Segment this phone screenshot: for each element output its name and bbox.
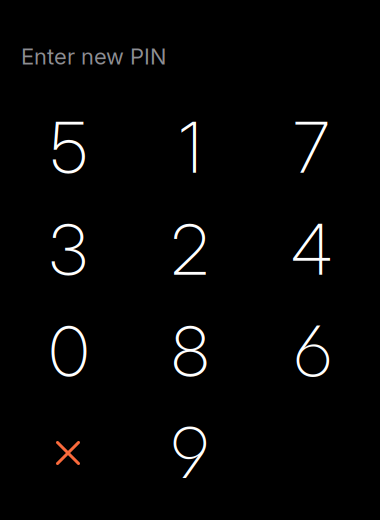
button[interactable]: Enter new PIN [21, 41, 171, 71]
staticText: 9 [170, 401, 210, 505]
button[interactable]: 0 [13, 303, 125, 399]
staticText: 0 [49, 310, 89, 393]
staticText: 5 [50, 106, 87, 189]
staticText: 3 [49, 208, 87, 291]
button[interactable]: 9 [134, 405, 246, 501]
button[interactable]: 7 [255, 99, 367, 195]
button[interactable]: 5 [13, 99, 125, 195]
staticText: 2 [171, 208, 209, 291]
button[interactable]: 2 [134, 201, 246, 297]
staticText: 4 [291, 208, 332, 291]
button[interactable]: 6 [257, 303, 369, 399]
button[interactable]: 3 [12, 201, 124, 297]
button[interactable]: 8 [134, 303, 246, 399]
staticText: 7 [293, 106, 329, 189]
staticText: 1 [179, 106, 201, 189]
staticText: 8 [171, 310, 208, 393]
button[interactable]: 4 [255, 201, 367, 297]
staticText: 6 [293, 299, 333, 403]
button[interactable]: 1 [134, 99, 246, 195]
button[interactable]: Cancel [12, 405, 124, 501]
staticText: Enter new PIN [21, 43, 166, 70]
